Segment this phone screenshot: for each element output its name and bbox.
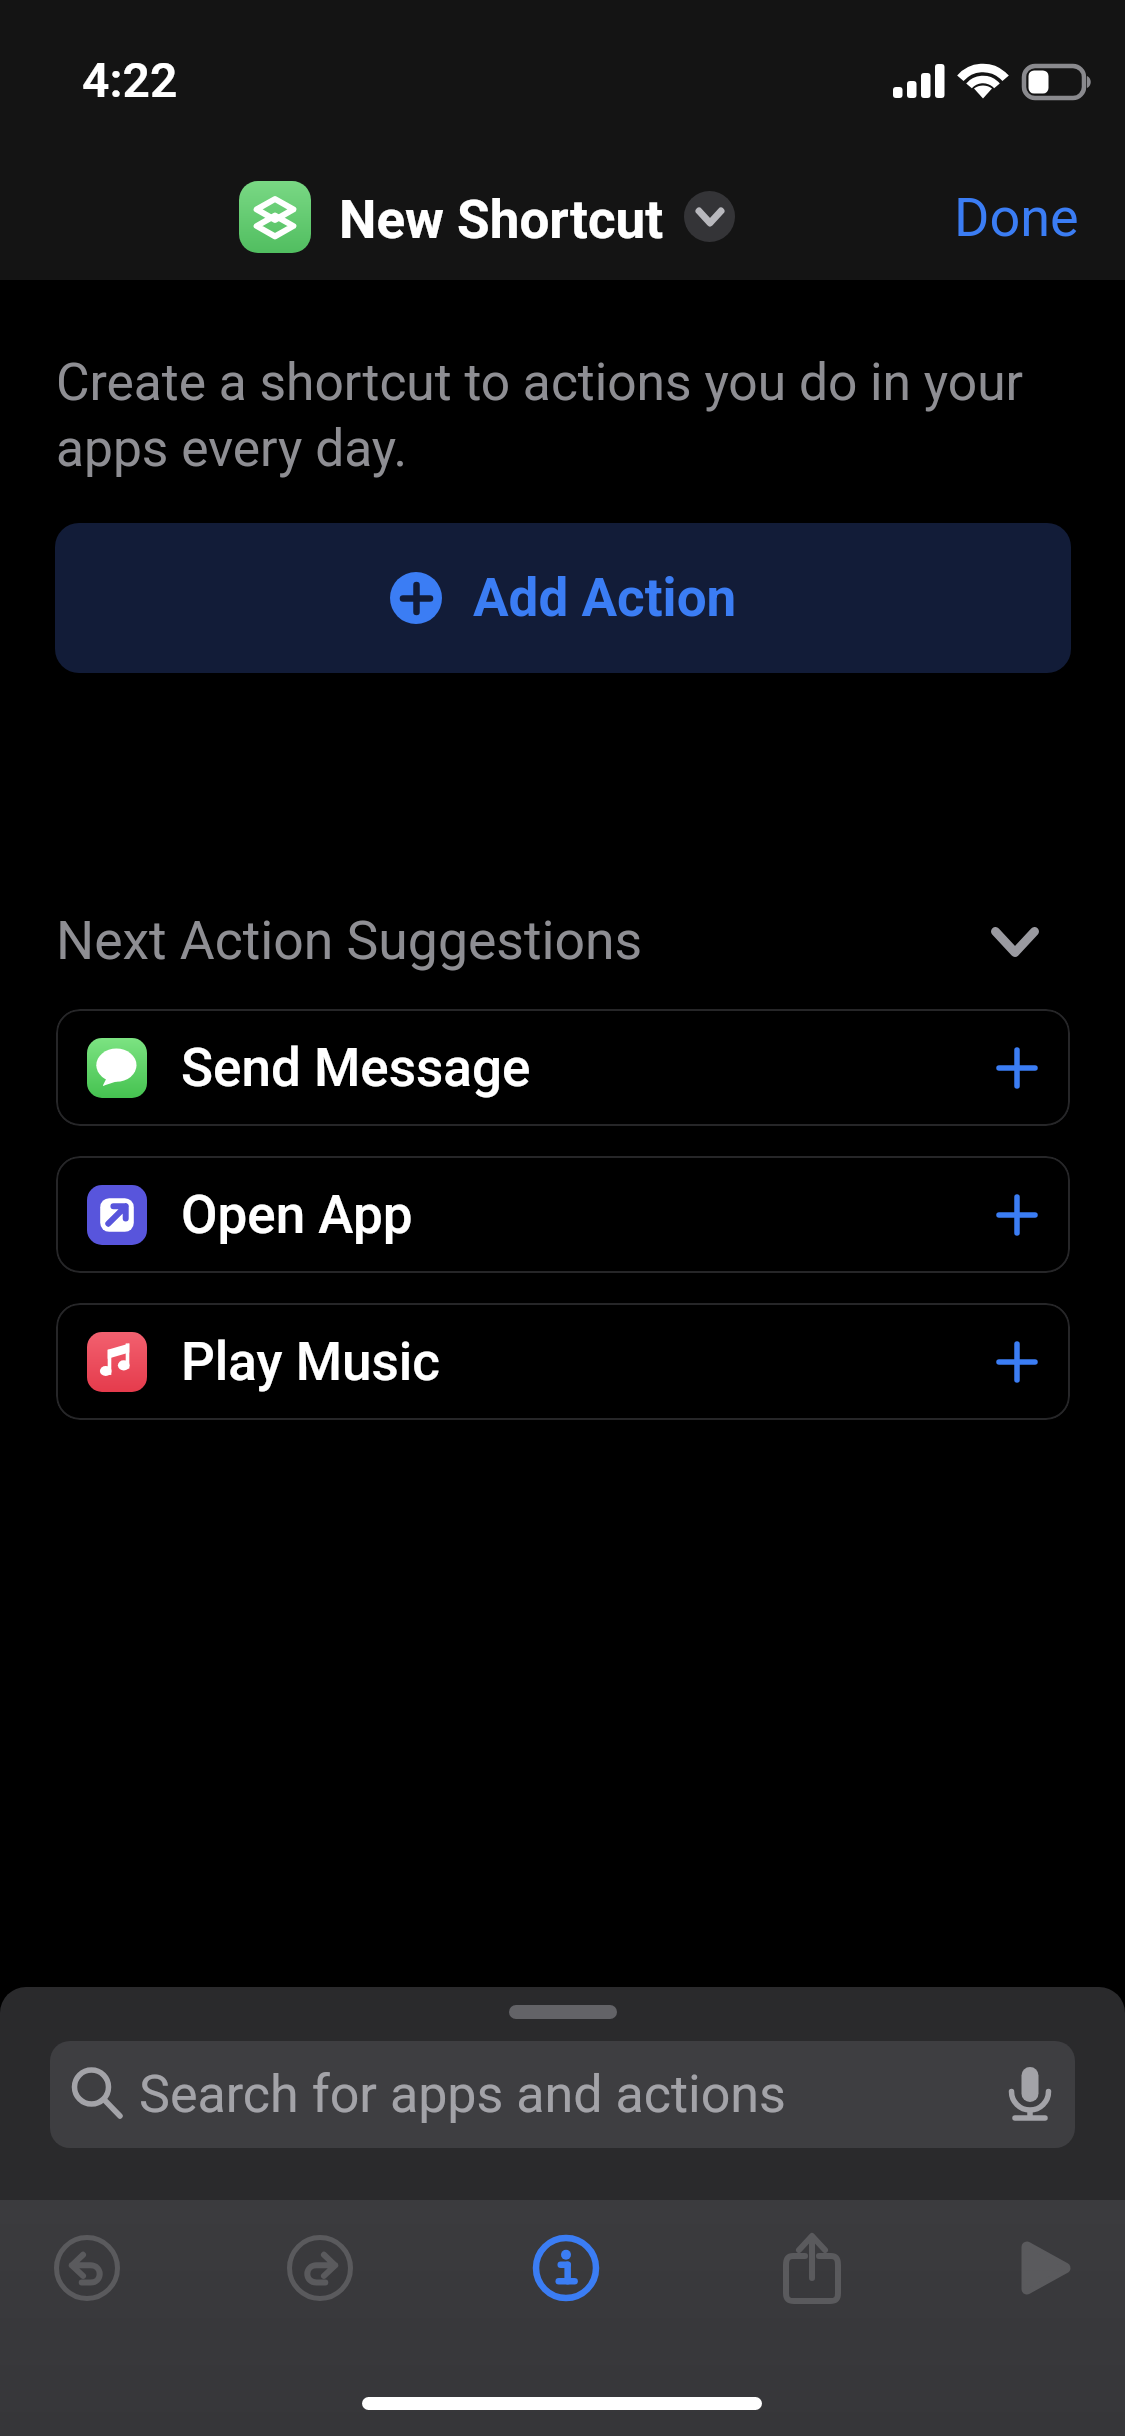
staticText: 4:22 bbox=[82, 52, 178, 108]
button[interactable]: Details bbox=[511, 2213, 621, 2323]
staticText: Next Action Suggestions bbox=[56, 909, 643, 972]
staticText: Play Music bbox=[181, 1331, 440, 1393]
staticText: Add Action bbox=[473, 567, 737, 629]
button[interactable]: Open App bbox=[56, 1156, 1070, 1273]
button[interactable]: Collapse suggestions bbox=[975, 902, 1055, 982]
staticText: Done bbox=[954, 186, 1079, 249]
button[interactable]: Add Action bbox=[55, 523, 1071, 673]
button[interactable]: Add Send Message bbox=[979, 1009, 1055, 1126]
button[interactable]: Play Music bbox=[56, 1303, 1070, 1420]
button[interactable]: Undo bbox=[32, 2213, 142, 2323]
button[interactable]: Done bbox=[926, 170, 1106, 264]
button[interactable]: Redo bbox=[265, 2213, 375, 2323]
button[interactable]: Send Message bbox=[56, 1009, 1070, 1126]
button[interactable]: Add Play Music bbox=[979, 1303, 1055, 1420]
staticText: New Shortcut bbox=[339, 189, 664, 251]
button[interactable]: Share bbox=[757, 2213, 867, 2323]
button[interactable]: Run bbox=[991, 2213, 1101, 2323]
staticText: Search for apps and actions bbox=[139, 2064, 786, 2125]
staticText: Send Message bbox=[181, 1037, 531, 1099]
button[interactable]: Shortcut options bbox=[684, 191, 735, 242]
staticText: Open App bbox=[181, 1184, 413, 1246]
staticText: Create a shortcut to actions you do in y… bbox=[56, 352, 1066, 479]
button[interactable]: Add Open App bbox=[979, 1156, 1055, 1273]
button[interactable]: Search for apps and actions bbox=[50, 2041, 1075, 2148]
